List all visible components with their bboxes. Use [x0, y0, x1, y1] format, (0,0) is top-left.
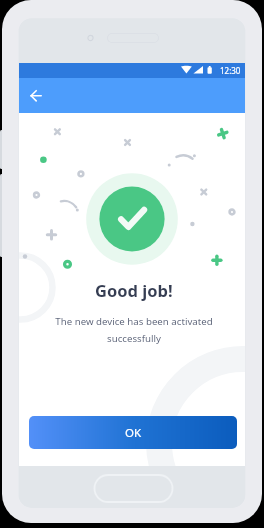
staticText: The new device has been activated succes… — [48, 315, 220, 344]
button[interactable]: OK — [29, 416, 237, 449]
staticText: Good job! — [95, 279, 173, 301]
staticText: 12:30 — [220, 65, 241, 76]
staticText: OK — [125, 425, 142, 441]
button[interactable]: Back — [25, 85, 47, 107]
